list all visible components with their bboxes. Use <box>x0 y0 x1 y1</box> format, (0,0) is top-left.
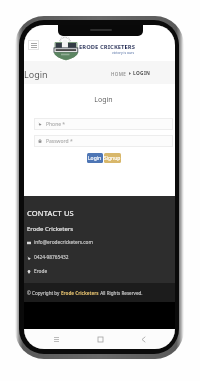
button[interactable]: 0424-98765432 <box>27 254 69 261</box>
staticText: ERODE CRICKETERS <box>79 43 136 51</box>
staticText: Login <box>88 155 102 162</box>
staticText: Password * <box>46 138 73 145</box>
staticText: Erode <box>34 268 48 275</box>
button[interactable]: Erode <box>27 268 48 275</box>
button[interactable]: Signup <box>104 153 121 163</box>
staticText: All Rights Reserved. <box>99 290 143 296</box>
staticText: Signup <box>104 155 121 162</box>
staticText: Erode Cricketers <box>27 225 74 233</box>
staticText: info@erodecricketers.com <box>34 239 93 246</box>
staticText: victory is ours <box>112 50 135 55</box>
button[interactable]: HOME <box>111 71 127 77</box>
staticText: CONTACT US <box>27 208 74 218</box>
button[interactable]: Password * <box>34 135 173 147</box>
staticText: Phone * <box>46 121 66 128</box>
staticText: Login <box>24 68 48 80</box>
button[interactable]: Recent apps <box>45 329 67 349</box>
button[interactable]: Phone * <box>34 118 173 130</box>
button[interactable]: Home <box>89 329 111 349</box>
staticText: Login <box>34 95 173 105</box>
button[interactable]: Menu <box>28 40 39 50</box>
staticText: Erode Cricketers <box>61 290 99 296</box>
staticText: LOGIN <box>133 70 151 77</box>
button[interactable]: info@erodecricketers.com <box>27 239 93 246</box>
button[interactable]: Back <box>132 329 154 349</box>
button[interactable]: Login <box>87 153 103 163</box>
staticText: 0424-98765432 <box>34 254 69 261</box>
staticText: © Copyright by <box>27 290 61 296</box>
